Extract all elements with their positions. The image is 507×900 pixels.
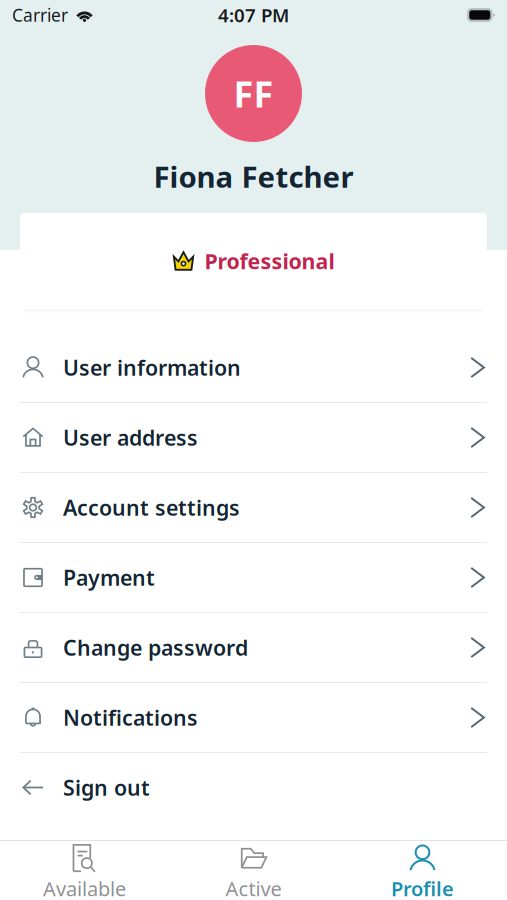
staticText: Notifications <box>63 703 198 732</box>
button[interactable]: Sign out <box>0 753 507 822</box>
button[interactable]: Change password <box>0 613 507 682</box>
staticText: User address <box>63 423 198 452</box>
staticText: Professional <box>204 247 334 275</box>
staticText: 4:07 PM <box>218 3 289 27</box>
button[interactable]: Payment <box>0 543 507 612</box>
staticText: Payment <box>63 563 155 592</box>
staticText: Carrier <box>12 3 68 26</box>
staticText: FF <box>233 70 273 117</box>
staticText: Profile <box>391 875 454 900</box>
button[interactable]: Profile <box>338 841 507 900</box>
staticText: Change password <box>63 633 248 662</box>
button[interactable]: Active <box>169 841 338 900</box>
button[interactable]: Account settings <box>0 473 507 542</box>
button[interactable]: Available <box>0 841 169 900</box>
button[interactable]: User address <box>0 403 507 472</box>
staticText: User information <box>63 353 241 382</box>
button[interactable]: Notifications <box>0 683 507 752</box>
button[interactable]: User information <box>0 333 507 402</box>
staticText: Active <box>225 875 281 900</box>
staticText: Fiona Fetcher <box>153 157 353 196</box>
staticText: Available <box>43 875 126 900</box>
staticText: Sign out <box>63 773 150 802</box>
staticText: Account settings <box>63 493 240 522</box>
